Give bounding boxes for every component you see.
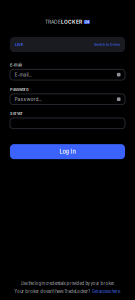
staticText: Get access here. [92, 289, 121, 294]
button[interactable]: Get access here. [92, 289, 121, 294]
staticText: E-mail... [14, 72, 31, 78]
staticText: LIVE [15, 42, 23, 47]
staticText: Switch to Demo [94, 42, 120, 47]
button[interactable]: Log In [10, 144, 125, 159]
staticText: Your broker doesn't have TradeLocker? [14, 289, 90, 294]
staticText: Log In [59, 148, 75, 155]
staticText: LOCKER [61, 19, 82, 25]
staticText: Password [10, 87, 28, 92]
staticText: 24 [85, 20, 89, 24]
staticText: E-mail [10, 62, 22, 67]
staticText: Password... [14, 96, 41, 102]
staticText: TRADE [45, 19, 61, 25]
staticText: Server [10, 111, 23, 116]
staticText: Use the login credentials provided by yo… [20, 281, 114, 286]
button[interactable]: Switch to Demo [94, 42, 120, 47]
